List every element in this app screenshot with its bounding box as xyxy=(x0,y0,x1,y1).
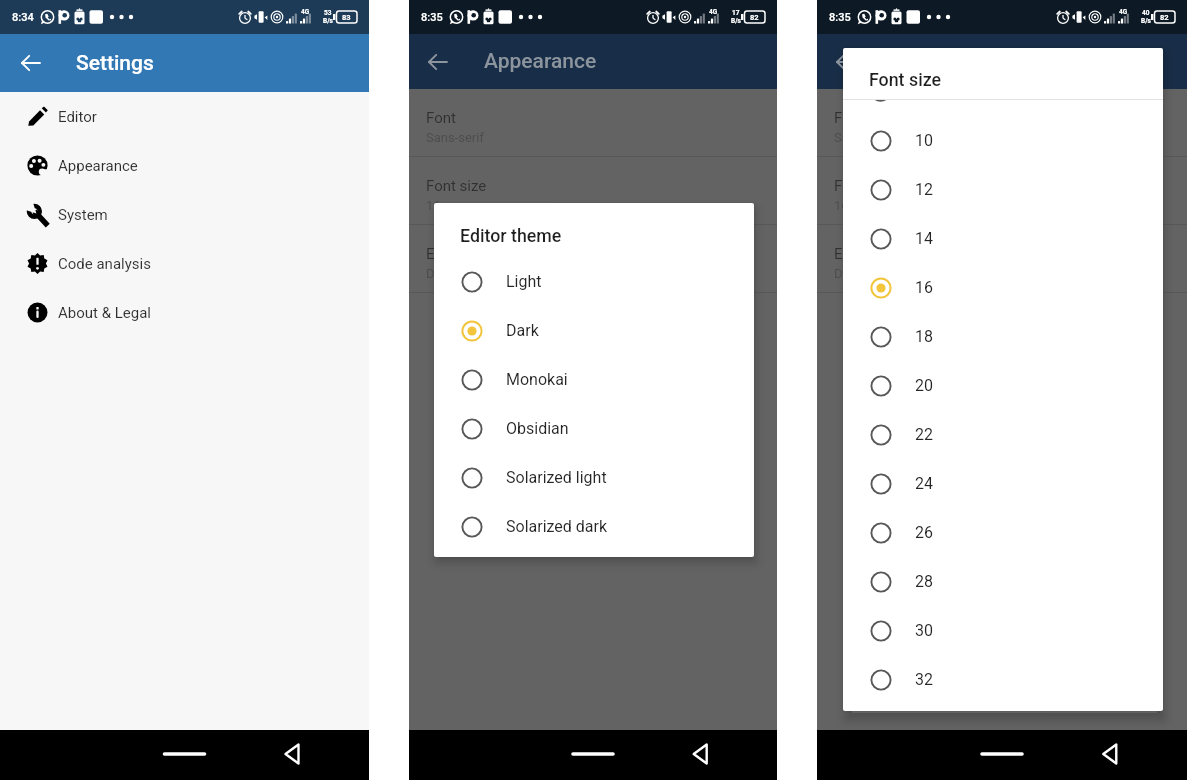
button[interactable]: Monokai xyxy=(434,355,754,404)
staticText: 17 xyxy=(732,9,740,17)
button[interactable]: 14 xyxy=(843,214,1163,263)
staticText: 8:35 xyxy=(421,11,443,24)
staticText: 28 xyxy=(915,572,933,591)
button[interactable]: Editor xyxy=(0,92,369,141)
staticText: Dark xyxy=(426,266,453,281)
staticText: 83 xyxy=(342,13,351,22)
button[interactable]: Back xyxy=(409,34,467,89)
staticText: B/s xyxy=(1141,17,1151,25)
button[interactable]: 30 xyxy=(843,606,1163,655)
staticText: 8:34 xyxy=(12,11,34,24)
button[interactable]: Solarized light xyxy=(434,453,754,502)
staticText: 16 xyxy=(915,278,933,297)
staticText: 26 xyxy=(915,523,933,542)
button[interactable]: 26 xyxy=(843,508,1163,557)
staticText: 12 xyxy=(915,180,933,199)
staticText: 4G xyxy=(1119,8,1128,16)
staticText: 4G xyxy=(301,8,310,16)
button[interactable]: 28 xyxy=(843,557,1163,606)
button[interactable]: About & Legal xyxy=(0,288,369,337)
button[interactable]: Font xyxy=(817,89,1187,157)
button[interactable]: Solarized dark xyxy=(434,502,754,551)
staticText: 22 xyxy=(915,425,933,444)
staticText: Font xyxy=(834,109,864,127)
staticText: Editor xyxy=(58,108,97,126)
staticText: Solarized light xyxy=(506,468,607,487)
staticText: Settings xyxy=(76,51,154,76)
staticText: Sans-serif xyxy=(834,130,892,145)
staticText: Dark xyxy=(834,266,861,281)
staticText: Appearance xyxy=(484,49,597,74)
staticText: Editor theme xyxy=(834,245,919,263)
staticText: Monokai xyxy=(506,370,568,389)
button[interactable]: Obsidian xyxy=(434,404,754,453)
button[interactable]: Editor theme xyxy=(409,225,777,293)
staticText: 10 xyxy=(915,131,933,150)
staticText: System xyxy=(58,206,108,224)
staticText: B/s xyxy=(731,17,741,25)
staticText: Appearance xyxy=(58,157,138,175)
button[interactable]: 18 xyxy=(843,312,1163,361)
button[interactable]: Code analysis xyxy=(0,239,369,288)
button[interactable]: Light xyxy=(434,257,754,306)
button[interactable]: System xyxy=(0,190,369,239)
staticText: 30 xyxy=(915,621,933,640)
button[interactable]: Font xyxy=(409,89,777,157)
button[interactable]: 12 xyxy=(843,165,1163,214)
button[interactable]: 24 xyxy=(843,459,1163,508)
staticText: Obsidian xyxy=(506,419,569,438)
button[interactable]: 16 xyxy=(843,263,1163,312)
staticText: 32 xyxy=(915,670,933,689)
staticText: Font size xyxy=(869,69,942,90)
button[interactable]: Back xyxy=(0,34,62,92)
button[interactable]: Editor theme xyxy=(817,225,1187,293)
staticText: Editor theme xyxy=(460,225,562,246)
button[interactable]: Font size xyxy=(409,157,777,225)
staticText: Font size xyxy=(426,177,487,195)
staticText: 53 xyxy=(324,9,332,17)
button[interactable]: 22 xyxy=(843,410,1163,459)
staticText: 82 xyxy=(750,13,759,22)
staticText: 16 xyxy=(834,198,849,213)
button[interactable]: Dark xyxy=(434,306,754,355)
button[interactable]: 20 xyxy=(843,361,1163,410)
button[interactable]: 10 xyxy=(843,116,1163,165)
button[interactable]: Font size xyxy=(817,157,1187,225)
staticText: 16 xyxy=(426,198,441,213)
staticText: 40 xyxy=(1142,9,1150,17)
staticText: About & Legal xyxy=(58,304,151,322)
staticText: 18 xyxy=(915,327,933,346)
staticText: B/s xyxy=(323,17,333,25)
staticText: 24 xyxy=(915,474,933,493)
staticText: Light xyxy=(506,272,542,291)
button[interactable]: 32 xyxy=(843,655,1163,704)
staticText: Dark xyxy=(506,321,539,340)
staticText: 20 xyxy=(915,376,933,395)
staticText: 8:35 xyxy=(829,11,851,24)
button[interactable]: Appearance xyxy=(0,141,369,190)
staticText: Sans-serif xyxy=(426,130,484,145)
staticText: Solarized dark xyxy=(506,517,608,536)
staticText: Editor theme xyxy=(426,245,511,263)
staticText: Font xyxy=(426,109,456,127)
staticText: 82 xyxy=(1160,13,1169,22)
staticText: 14 xyxy=(915,229,933,248)
staticText: Code analysis xyxy=(58,255,151,273)
staticText: 4G xyxy=(709,8,718,16)
button[interactable]: Back xyxy=(817,34,875,89)
staticText: Font size xyxy=(834,177,895,195)
